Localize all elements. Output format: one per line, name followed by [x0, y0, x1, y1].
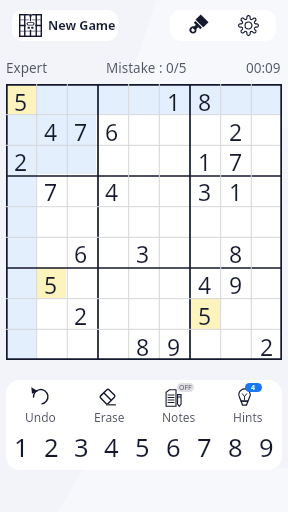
- button[interactable]: 2: [66, 298, 96, 329]
- button[interactable]: OFF: [144, 380, 213, 426]
- button[interactable]: [127, 298, 158, 329]
- button[interactable]: [36, 144, 66, 174]
- button[interactable]: [158, 236, 189, 267]
- button[interactable]: 8: [189, 84, 220, 114]
- button[interactable]: [158, 205, 189, 236]
- button[interactable]: 1: [189, 144, 220, 174]
- button[interactable]: [66, 174, 96, 205]
- button[interactable]: 9: [251, 427, 282, 467]
- button[interactable]: [158, 267, 189, 298]
- button[interactable]: [96, 329, 127, 360]
- button[interactable]: Erase: [75, 380, 144, 426]
- button[interactable]: [127, 174, 158, 205]
- button[interactable]: 4: [189, 267, 220, 298]
- button[interactable]: [96, 236, 127, 267]
- button[interactable]: [251, 267, 282, 298]
- button[interactable]: 4: [96, 427, 127, 467]
- button[interactable]: [36, 298, 66, 329]
- button[interactable]: [6, 298, 36, 329]
- button[interactable]: [36, 236, 66, 267]
- button[interactable]: [6, 114, 36, 144]
- button[interactable]: 3: [127, 236, 158, 267]
- button[interactable]: Settings: [232, 10, 265, 41]
- button[interactable]: [158, 298, 189, 329]
- button[interactable]: 4: [36, 114, 66, 144]
- button[interactable]: [6, 236, 36, 267]
- button[interactable]: [96, 298, 127, 329]
- button[interactable]: 3: [66, 427, 96, 467]
- button[interactable]: [220, 84, 251, 114]
- button[interactable]: 1: [158, 84, 189, 114]
- button[interactable]: [220, 205, 251, 236]
- button[interactable]: 2: [6, 144, 36, 174]
- button[interactable]: 2: [251, 329, 282, 360]
- button[interactable]: [66, 84, 96, 114]
- button[interactable]: [127, 205, 158, 236]
- button[interactable]: 6: [158, 427, 189, 467]
- button[interactable]: 7: [220, 144, 251, 174]
- button[interactable]: 2: [220, 114, 251, 144]
- button[interactable]: [158, 144, 189, 174]
- button[interactable]: 5: [36, 267, 66, 298]
- button[interactable]: Themes: [181, 10, 214, 41]
- button[interactable]: 2: [36, 427, 66, 467]
- button[interactable]: Undo: [6, 380, 75, 426]
- button[interactable]: [96, 84, 127, 114]
- button[interactable]: [6, 205, 36, 236]
- button[interactable]: [6, 174, 36, 205]
- button[interactable]: 1: [220, 174, 251, 205]
- button[interactable]: [189, 329, 220, 360]
- button[interactable]: 5: [6, 84, 36, 114]
- button[interactable]: New Game: [12, 10, 118, 41]
- button[interactable]: 8: [127, 329, 158, 360]
- button[interactable]: [158, 114, 189, 144]
- button[interactable]: [127, 84, 158, 114]
- button[interactable]: [251, 236, 282, 267]
- button[interactable]: [36, 84, 66, 114]
- button[interactable]: [251, 298, 282, 329]
- button[interactable]: [96, 205, 127, 236]
- button[interactable]: 4: [213, 380, 282, 426]
- button[interactable]: [189, 114, 220, 144]
- staticText: 2: [44, 430, 59, 465]
- button[interactable]: 3: [189, 174, 220, 205]
- button[interactable]: 6: [66, 236, 96, 267]
- button[interactable]: [127, 144, 158, 174]
- button[interactable]: [251, 114, 282, 144]
- button[interactable]: [251, 174, 282, 205]
- button[interactable]: 8: [220, 427, 251, 467]
- button[interactable]: 7: [36, 174, 66, 205]
- button[interactable]: [251, 144, 282, 174]
- button[interactable]: [220, 298, 251, 329]
- button[interactable]: [251, 205, 282, 236]
- button[interactable]: [158, 174, 189, 205]
- button[interactable]: 1: [6, 427, 36, 467]
- button[interactable]: [96, 144, 127, 174]
- button[interactable]: [36, 205, 66, 236]
- button[interactable]: [189, 205, 220, 236]
- button[interactable]: [66, 267, 96, 298]
- button[interactable]: [127, 267, 158, 298]
- button[interactable]: 5: [189, 298, 220, 329]
- button[interactable]: [127, 114, 158, 144]
- button[interactable]: [6, 267, 36, 298]
- button[interactable]: [6, 329, 36, 360]
- button[interactable]: [220, 329, 251, 360]
- button[interactable]: 9: [220, 267, 251, 298]
- button[interactable]: [36, 329, 66, 360]
- button[interactable]: 8: [220, 236, 251, 267]
- button[interactable]: [251, 84, 282, 114]
- button[interactable]: [66, 329, 96, 360]
- button[interactable]: [66, 144, 96, 174]
- button[interactable]: 7: [66, 114, 96, 144]
- staticText: 8: [136, 331, 150, 362]
- staticText: OFF: [179, 383, 192, 392]
- button[interactable]: 6: [96, 114, 127, 144]
- button[interactable]: [66, 205, 96, 236]
- button[interactable]: 9: [158, 329, 189, 360]
- button[interactable]: [189, 236, 220, 267]
- button[interactable]: 4: [96, 174, 127, 205]
- button[interactable]: [96, 267, 127, 298]
- button[interactable]: 7: [189, 427, 220, 467]
- button[interactable]: 5: [127, 427, 158, 467]
